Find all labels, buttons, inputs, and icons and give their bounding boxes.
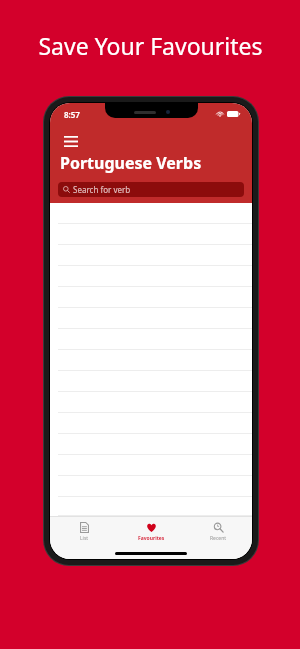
- button[interactable]: [50, 350, 252, 371]
- staticText: 8:57: [64, 109, 80, 120]
- button[interactable]: [50, 371, 252, 392]
- button[interactable]: Recent: [185, 517, 252, 547]
- button[interactable]: [50, 329, 252, 350]
- button[interactable]: [50, 308, 252, 329]
- button[interactable]: [50, 497, 252, 516]
- button[interactable]: [50, 476, 252, 497]
- button[interactable]: [50, 266, 252, 287]
- button[interactable]: Menu: [58, 128, 84, 154]
- staticText: Recent: [210, 535, 227, 542]
- button[interactable]: [50, 434, 252, 455]
- button[interactable]: List: [50, 517, 118, 547]
- button[interactable]: [50, 245, 252, 266]
- staticText: Favourites: [138, 535, 165, 542]
- staticText: List: [80, 535, 89, 542]
- button[interactable]: Search for verb: [58, 182, 244, 197]
- staticText: Portuguese Verbs: [60, 152, 202, 174]
- button[interactable]: [50, 287, 252, 308]
- staticText: Search for verb: [73, 184, 131, 195]
- button[interactable]: [50, 203, 252, 224]
- button[interactable]: Favourites: [118, 517, 185, 547]
- button[interactable]: [50, 224, 252, 245]
- staticText: Save Your Favourites: [38, 30, 263, 61]
- button[interactable]: [50, 392, 252, 413]
- button[interactable]: [50, 455, 252, 476]
- button[interactable]: [50, 413, 252, 434]
